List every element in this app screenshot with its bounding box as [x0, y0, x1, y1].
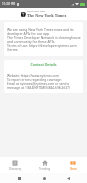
staticText: News [70, 167, 77, 171]
button[interactable]: News [59, 159, 87, 172]
staticText: MORE NEWS FROM [27, 10, 46, 13]
button[interactable]: Home [39, 173, 49, 183]
staticText: Discovery [9, 167, 22, 171]
staticText: Contact Details [7, 62, 80, 67]
staticText: We are using New York Times news and its… [7, 27, 81, 52]
staticText: The New York Times [27, 13, 67, 18]
staticText: Trending [39, 167, 51, 171]
staticText: Website: https://www.nytimes.com To repo… [7, 74, 70, 90]
button[interactable]: Trending [30, 159, 59, 172]
button[interactable]: Discovery [0, 159, 30, 172]
button[interactable]: Recents [14, 173, 24, 183]
staticText: 11:28 PM [2, 2, 16, 6]
button[interactable]: Back [63, 173, 73, 183]
